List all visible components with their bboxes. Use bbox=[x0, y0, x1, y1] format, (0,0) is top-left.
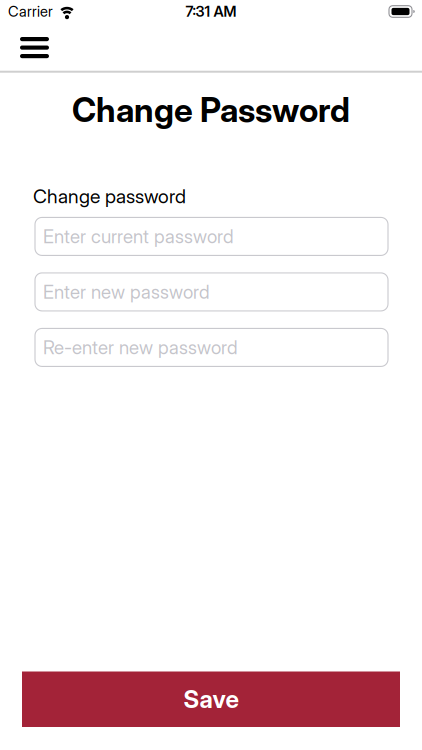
staticText: Change password bbox=[33, 184, 186, 208]
button[interactable]: Menu bbox=[0, 23, 49, 71]
staticText: Re-enter new password bbox=[43, 336, 238, 359]
staticText: Change Password bbox=[72, 90, 350, 130]
staticText: Carrier bbox=[8, 3, 53, 20]
button[interactable]: Re-enter new password bbox=[35, 328, 388, 366]
button[interactable]: Enter new password bbox=[35, 273, 388, 311]
staticText: Enter new password bbox=[43, 281, 210, 303]
staticText: Enter current password bbox=[43, 225, 234, 248]
staticText: Save bbox=[183, 685, 238, 714]
button[interactable]: Enter current password bbox=[35, 217, 388, 255]
button[interactable]: Save bbox=[22, 671, 400, 727]
staticText: 7:31 AM bbox=[185, 3, 236, 20]
